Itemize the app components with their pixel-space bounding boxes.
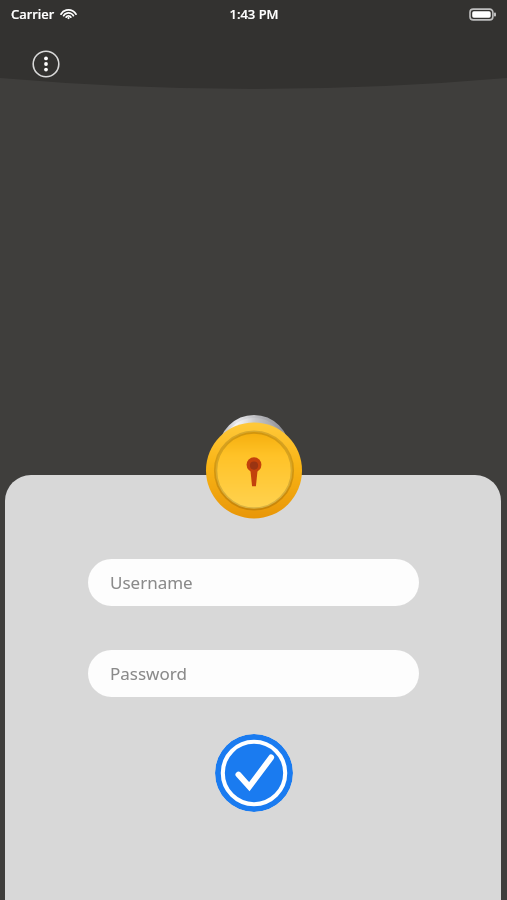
button[interactable]: Sign in: [215, 734, 293, 812]
staticText: Password: [110, 662, 187, 685]
button[interactable]: Password: [88, 650, 419, 697]
button[interactable]: Username: [88, 559, 419, 606]
staticText: Carrier: [11, 5, 55, 23]
button[interactable]: More options: [26, 44, 66, 84]
staticText: Username: [110, 571, 193, 594]
staticText: 1:43 PM: [229, 5, 279, 23]
